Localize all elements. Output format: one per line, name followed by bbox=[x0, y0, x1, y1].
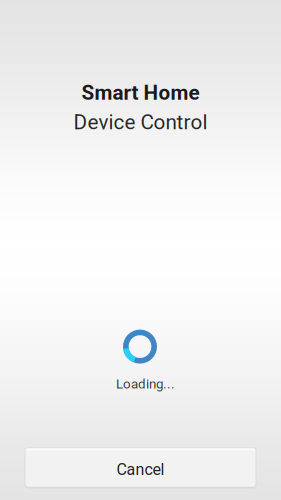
staticText: Device Control bbox=[73, 110, 207, 134]
button[interactable]: Cancel bbox=[25, 447, 256, 488]
staticText: Cancel bbox=[116, 460, 164, 479]
staticText: Loading... bbox=[116, 376, 175, 392]
staticText: Smart Home bbox=[81, 81, 199, 105]
